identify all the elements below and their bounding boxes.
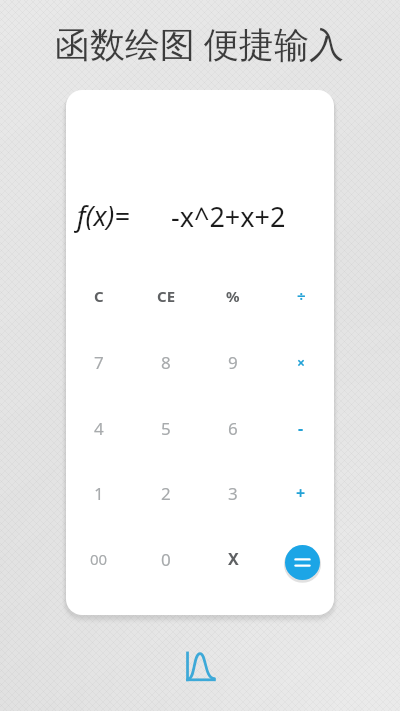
- staticText: 9: [228, 351, 238, 374]
- staticText: CE: [157, 286, 176, 306]
- button[interactable]: 7: [67, 332, 131, 392]
- button[interactable]: Equals: [282, 542, 323, 583]
- button[interactable]: 4: [67, 398, 131, 458]
- button[interactable]: 6: [201, 398, 265, 458]
- staticText: 3: [228, 482, 238, 505]
- button[interactable]: 2: [134, 463, 198, 523]
- staticText: -: [298, 417, 304, 439]
- staticText: 4: [94, 417, 104, 440]
- staticText: 6: [228, 417, 238, 440]
- staticText: 00: [90, 549, 108, 569]
- staticText: 1: [94, 482, 104, 505]
- staticText: +: [296, 482, 306, 504]
- staticText: %: [226, 286, 240, 306]
- button[interactable]: ÷: [269, 266, 333, 326]
- staticText: 0: [161, 548, 171, 571]
- staticText: 2: [161, 482, 171, 505]
- button[interactable]: 1: [67, 463, 131, 523]
- staticText: X: [228, 548, 239, 570]
- staticText: f(x)=: [77, 197, 130, 234]
- staticText: 7: [94, 351, 104, 374]
- button[interactable]: 00: [67, 529, 131, 589]
- button[interactable]: +: [269, 463, 333, 523]
- button[interactable]: ×: [269, 332, 333, 392]
- staticText: 5: [161, 417, 171, 440]
- staticText: ÷: [297, 286, 306, 306]
- staticText: ×: [297, 353, 306, 372]
- button[interactable]: C: [67, 266, 131, 326]
- button[interactable]: -: [269, 398, 333, 458]
- button[interactable]: X: [201, 529, 265, 589]
- button[interactable]: CE: [134, 266, 198, 326]
- staticText: -x^2+x+2: [171, 198, 286, 235]
- button[interactable]: 3: [201, 463, 265, 523]
- button[interactable]: 5: [134, 398, 198, 458]
- button[interactable]: 9: [201, 332, 265, 392]
- staticText: C: [94, 286, 104, 306]
- button[interactable]: %: [201, 266, 265, 326]
- button[interactable]: 8: [134, 332, 198, 392]
- staticText: 8: [161, 351, 171, 374]
- button[interactable]: 0: [134, 529, 198, 589]
- staticText: 函数绘图 便捷输入: [55, 20, 345, 68]
- button[interactable]: Plot graph: [184, 651, 216, 683]
